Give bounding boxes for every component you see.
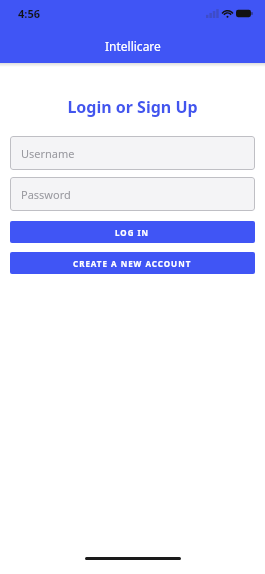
- staticText: 4:56: [18, 6, 40, 21]
- button[interactable]: CREATE A NEW ACCOUNT: [10, 252, 255, 274]
- staticText: Login or Sign Up: [0, 96, 265, 118]
- button[interactable]: LOG IN: [10, 221, 255, 243]
- staticText: Password: [21, 187, 71, 202]
- staticText: LOG IN: [115, 227, 150, 238]
- staticText: CREATE A NEW ACCOUNT: [73, 258, 192, 269]
- staticText: Username: [21, 146, 75, 161]
- staticText: Intellicare: [105, 38, 161, 54]
- button[interactable]: Username: [10, 136, 255, 170]
- button[interactable]: Password: [10, 177, 255, 211]
